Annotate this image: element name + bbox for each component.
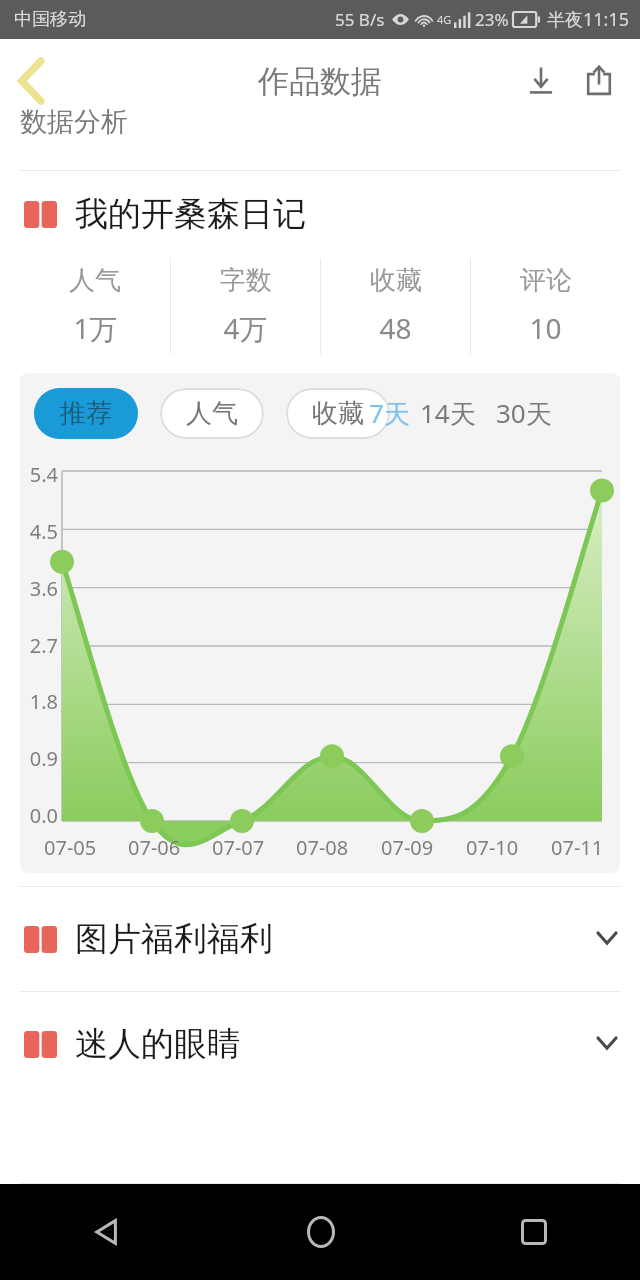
button[interactable]: 推荐: [34, 388, 138, 439]
staticText: 半夜11:15: [547, 7, 630, 32]
staticText: 字数: [220, 264, 272, 297]
staticText: 4G: [437, 12, 452, 27]
staticText: 人气: [69, 264, 121, 297]
button[interactable]: 14天: [420, 395, 476, 431]
staticText: 收藏: [370, 264, 422, 297]
button[interactable]: Recent apps: [427, 1184, 640, 1280]
button[interactable]: 人气: [160, 388, 264, 439]
staticText: 评论: [520, 264, 572, 297]
staticText: 48: [379, 309, 412, 347]
staticText: 5.4: [20, 461, 58, 488]
button[interactable]: Back: [0, 50, 62, 112]
button[interactable]: Share: [570, 52, 628, 110]
staticText: 推荐: [60, 397, 112, 430]
staticText: 收藏: [312, 397, 364, 430]
staticText: 0.0: [20, 802, 58, 829]
staticText: 0.9: [20, 745, 58, 772]
staticText: 14天: [420, 395, 476, 431]
staticText: 图片福利福利: [75, 918, 273, 960]
button[interactable]: 迷人的眼睛: [0, 992, 640, 1096]
staticText: 4万: [223, 309, 268, 347]
staticText: 迷人的眼睛: [75, 1023, 240, 1065]
button[interactable]: 7天: [369, 395, 410, 431]
staticText: 07-10: [466, 834, 519, 861]
staticText: 中国移动: [14, 8, 86, 31]
staticText: 7天: [369, 395, 410, 431]
staticText: 1万: [73, 309, 118, 347]
staticText: 1.8: [20, 688, 58, 715]
staticText: 23%: [475, 8, 509, 31]
button[interactable]: Download: [512, 52, 570, 110]
staticText: 2.7: [20, 632, 58, 659]
staticText: 3.6: [20, 575, 58, 602]
staticText: 我的开桑森日记: [75, 193, 306, 235]
button[interactable]: 30天: [496, 395, 552, 431]
staticText: 人气: [186, 397, 238, 430]
staticText: 07-09: [381, 834, 434, 861]
staticText: 10: [529, 309, 562, 347]
staticText: 07-11: [551, 834, 604, 861]
button[interactable]: 图片福利福利: [0, 887, 640, 991]
button[interactable]: Home: [214, 1184, 427, 1280]
button[interactable]: Back: [0, 1184, 214, 1280]
staticText: 07-08: [296, 834, 349, 861]
staticText: 07-07: [212, 834, 265, 861]
staticText: 数据分析: [20, 105, 128, 139]
staticText: 07-05: [44, 834, 97, 861]
button[interactable]: 我的开桑森日记: [0, 193, 640, 235]
staticText: 55 B/s: [335, 8, 385, 31]
staticText: 30天: [496, 395, 552, 431]
button[interactable]: 收藏: [286, 388, 390, 439]
staticText: 07-06: [128, 834, 181, 861]
staticText: 作品数据: [258, 62, 382, 101]
staticText: 4.5: [20, 518, 58, 545]
